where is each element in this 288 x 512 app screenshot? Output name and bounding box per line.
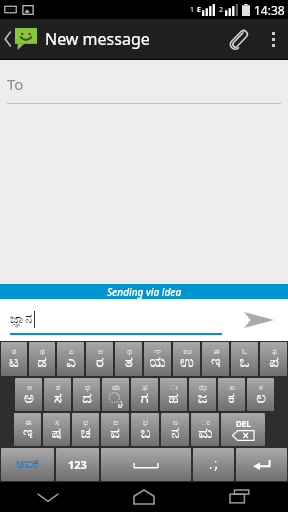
staticText: ಱ [98, 348, 103, 355]
staticText: ಟ [9, 355, 19, 370]
staticText: ಡ [37, 355, 47, 370]
staticText: 123 [68, 457, 87, 472]
button[interactable]: ಝ [189, 378, 216, 411]
button[interactable]: ಳ [247, 378, 274, 411]
staticText: ಧ [85, 384, 90, 391]
staticText: ಊ [183, 348, 192, 355]
staticText: ಈ [25, 419, 32, 426]
button[interactable]: ಈ [202, 342, 229, 376]
staticText: ಇ [211, 355, 221, 370]
staticText: ಎ [66, 355, 76, 370]
button[interactable]: Send [230, 299, 288, 341]
staticText: ಢ [40, 348, 45, 355]
staticText: ರ [96, 355, 104, 370]
button[interactable]: ಸ [43, 413, 70, 446]
staticText: 14:38 [254, 2, 285, 18]
button[interactable]: ಅಐಕ [1, 448, 54, 481]
staticText: ಘ [142, 384, 148, 391]
button[interactable]: ಏ [57, 342, 84, 376]
button[interactable]: ಊ [173, 342, 200, 376]
button[interactable]: ಖ [218, 378, 245, 411]
staticText: ೃ [108, 391, 123, 406]
button[interactable]: ಛ [72, 413, 99, 446]
staticText: ಫ [272, 348, 277, 355]
staticText: ಶ [56, 384, 60, 391]
staticText: ಛ [83, 419, 88, 426]
button[interactable]: 123 [56, 448, 99, 481]
button[interactable]: ಶ [44, 378, 71, 411]
button[interactable]: ಓ [231, 342, 258, 376]
button[interactable]: ಃ [160, 378, 187, 411]
staticText: ಷ [51, 426, 62, 441]
staticText: ಃ [170, 384, 178, 391]
button[interactable]: ಞ [144, 342, 171, 376]
button[interactable]: Space [101, 448, 191, 481]
button[interactable]: ಠ [1, 342, 27, 376]
staticText: ಠ [12, 348, 16, 355]
staticText: ಒ [239, 355, 250, 370]
staticText: New message [45, 28, 150, 50]
staticText: ದ [82, 391, 92, 406]
staticText: Sending via !dea [107, 285, 182, 299]
button[interactable]: ಣ [161, 413, 189, 446]
button[interactable]: Hide keyboard [0, 482, 96, 512]
staticText: ಉ [180, 355, 194, 370]
staticText: ಂ [201, 419, 210, 426]
button[interactable]: Attach [218, 19, 258, 59]
button[interactable]: ಘ [131, 378, 158, 411]
staticText: ಹ [168, 391, 179, 406]
button[interactable]: ಫ [260, 342, 287, 376]
staticText: ಞ [154, 348, 161, 355]
staticText: 2 [219, 5, 224, 15]
staticText: ಖ [229, 384, 235, 391]
staticText: ಗ [140, 391, 149, 406]
staticText: ಣ [173, 419, 178, 426]
staticText: ಲ [256, 391, 266, 406]
staticText: ಕ [228, 391, 235, 406]
staticText: ತ [125, 355, 133, 370]
staticText: ಜ [197, 391, 208, 406]
button[interactable]: ಈ [14, 413, 41, 446]
staticText: ಯ [149, 355, 166, 370]
staticText: ಸ [55, 419, 59, 426]
staticText: ಋ [112, 384, 120, 391]
staticText: ಸ [54, 391, 62, 406]
button[interactable]: ಙ [101, 413, 129, 446]
staticText: DEL [236, 418, 251, 429]
button[interactable]: ಭ [131, 413, 159, 446]
button[interactable]: ಧ [73, 378, 100, 411]
staticText: ಙ [113, 419, 118, 426]
staticText: ಳ [259, 384, 263, 391]
button[interactable]: ಱ [86, 342, 113, 376]
staticText: ಏ [69, 348, 74, 355]
staticText: ಅ [24, 391, 34, 406]
staticText: ಓ [242, 348, 247, 355]
staticText: ಚ [80, 426, 91, 441]
button[interactable]: Navigate up [0, 19, 39, 59]
staticText: To [7, 74, 24, 94]
staticText: 1 [190, 5, 195, 15]
button[interactable]: ಥ [115, 342, 142, 376]
staticText: ನ [171, 426, 180, 441]
staticText: ವ [110, 426, 120, 441]
button[interactable]: ಋ [102, 378, 129, 411]
button[interactable]: Enter [236, 448, 287, 481]
staticText: ಪ [269, 355, 279, 370]
staticText: ಈ [213, 348, 220, 355]
button[interactable]: ಢ [29, 342, 55, 376]
button[interactable]: Recent apps [192, 482, 288, 512]
staticText: ಭ [143, 419, 148, 426]
button[interactable]: ಂ [191, 413, 219, 446]
staticText: ಇ [23, 426, 33, 441]
button[interactable]: Punctuation [193, 448, 234, 481]
button[interactable]: More options [258, 19, 288, 59]
staticText: ಮ [198, 426, 213, 441]
button[interactable]: Delete [221, 413, 265, 446]
button[interactable]: ಆ [15, 378, 42, 411]
button[interactable]: Home [96, 482, 192, 512]
button[interactable]: ಜ್ಞಾನ [0, 306, 230, 335]
staticText: ಝ [199, 384, 207, 391]
staticText: E [197, 5, 201, 15]
button[interactable]: To [0, 60, 288, 104]
staticText: ಬ [140, 426, 151, 441]
